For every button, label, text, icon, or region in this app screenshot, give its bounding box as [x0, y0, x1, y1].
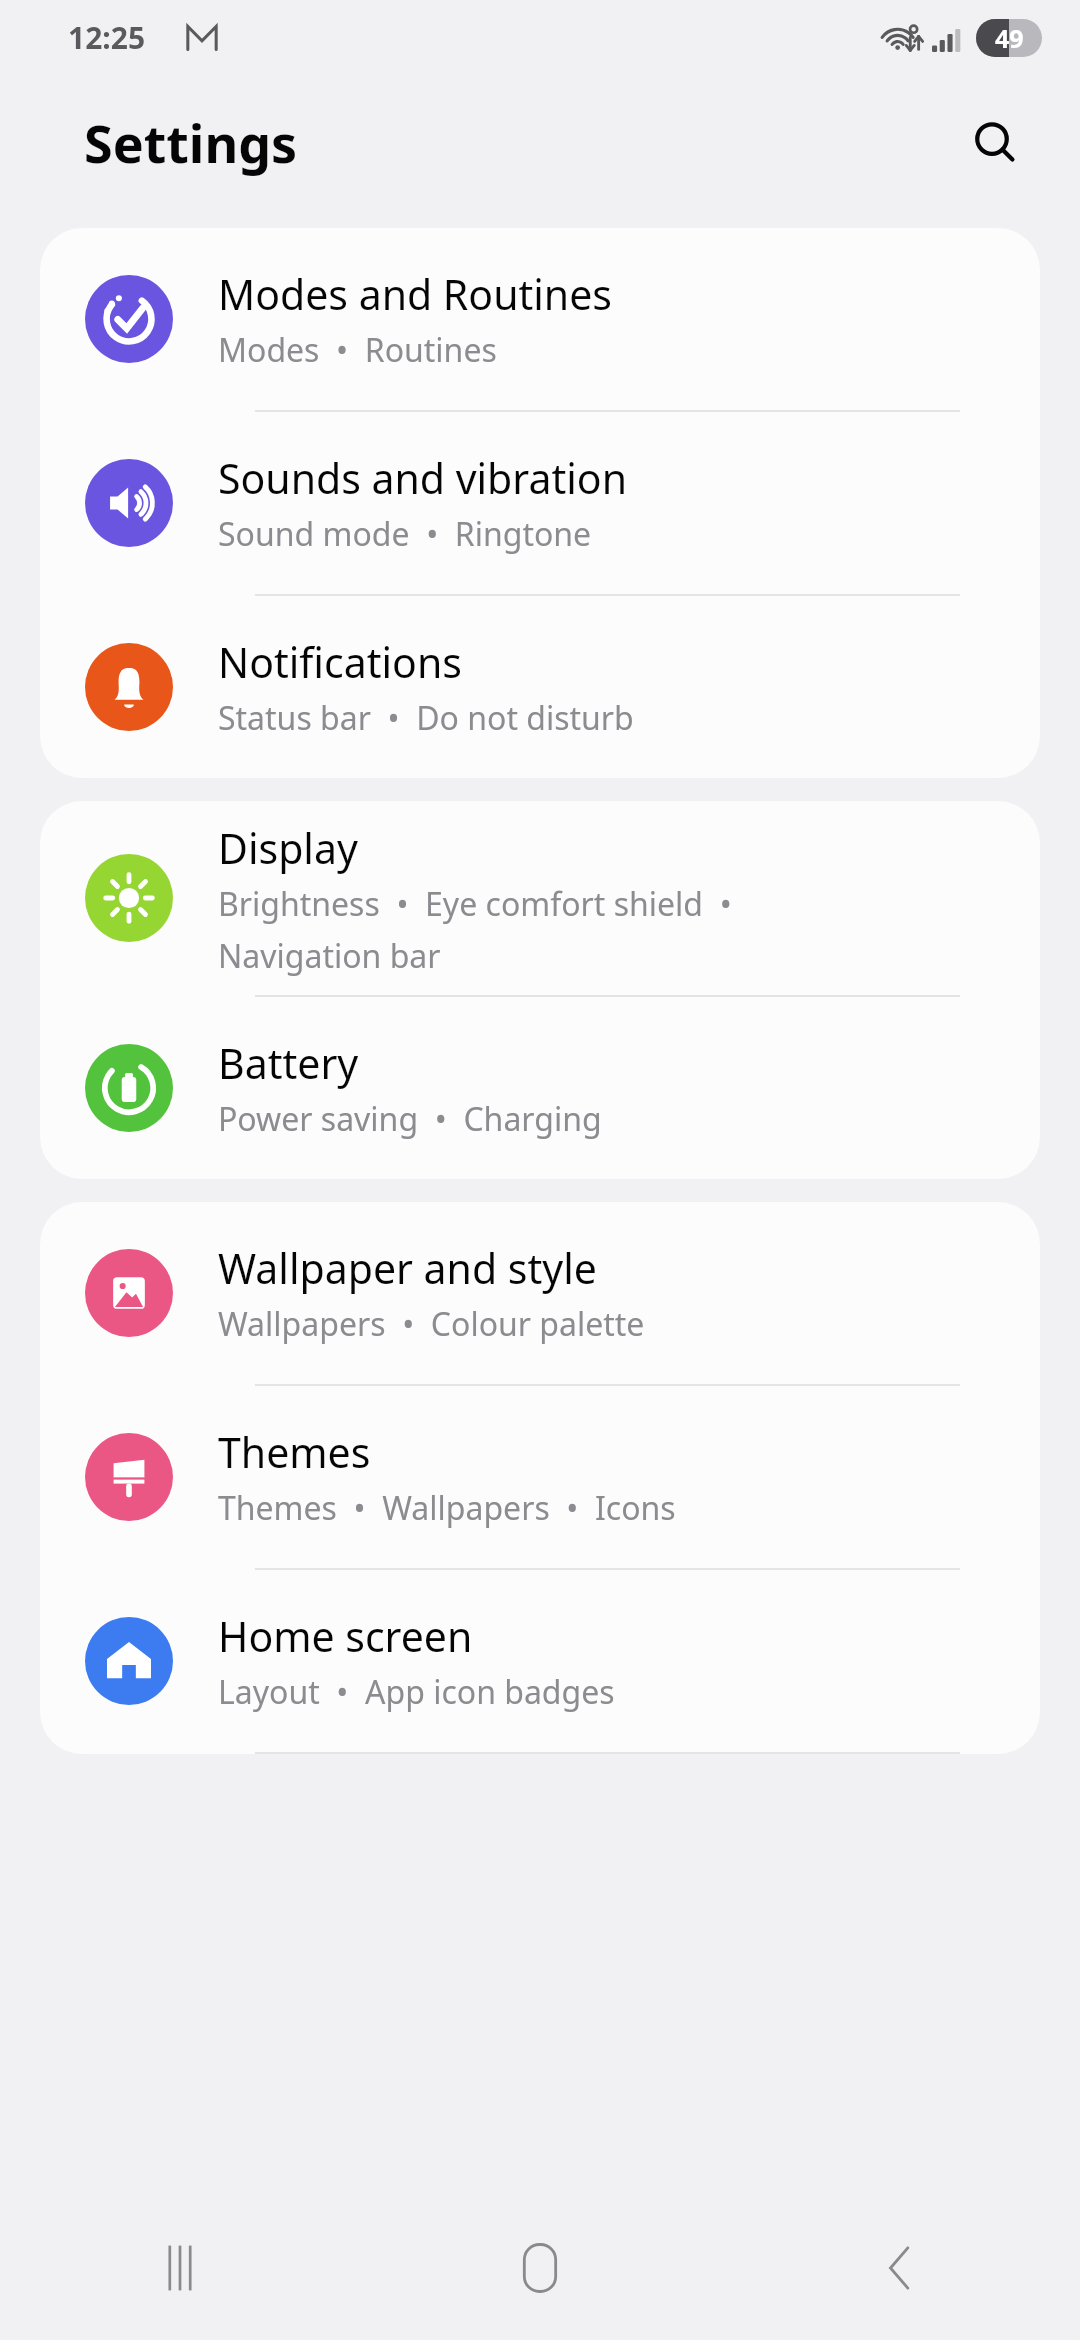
button[interactable]: Battery	[40, 997, 1040, 1179]
staticText: Brightness • Eye comfort shield • Naviga…	[218, 882, 732, 977]
button[interactable]: Themes	[40, 1386, 1040, 1570]
staticText: Display	[218, 820, 358, 876]
button[interactable]: Back	[720, 2195, 1080, 2340]
staticText: Settings	[84, 107, 298, 178]
staticText: Wallpapers • Colour palette	[218, 1302, 645, 1346]
button[interactable]: Sounds and vibration	[40, 412, 1040, 596]
staticText: Sounds and vibration	[218, 450, 627, 506]
button[interactable]: Display	[40, 801, 1040, 997]
staticText: Power saving • Charging	[218, 1097, 602, 1141]
staticText: Status bar • Do not disturb	[218, 696, 634, 740]
button[interactable]: Home screen	[40, 1570, 1040, 1754]
button[interactable]: Notifications	[40, 596, 1040, 778]
staticText: Modes • Routines	[218, 328, 497, 372]
staticText: Themes	[218, 1424, 371, 1480]
staticText: Notifications	[218, 634, 462, 690]
staticText: Home screen	[218, 1608, 473, 1664]
button[interactable]: Home	[360, 2195, 720, 2340]
button[interactable]: Wallpaper and style	[40, 1202, 1040, 1386]
staticText: 12:25	[68, 17, 146, 58]
staticText: Modes and Routines	[218, 266, 612, 322]
staticText: Battery	[218, 1035, 359, 1091]
staticText: Sound mode • Ringtone	[218, 512, 592, 556]
staticText: 49	[995, 21, 1024, 55]
staticText: Layout • App icon badges	[218, 1670, 615, 1714]
button[interactable]: Search	[960, 107, 1032, 179]
button[interactable]: Recent apps	[0, 2195, 360, 2340]
button[interactable]: Modes and Routines	[40, 228, 1040, 412]
staticText: Themes • Wallpapers • Icons	[218, 1486, 676, 1530]
staticText: Wallpaper and style	[218, 1240, 597, 1296]
